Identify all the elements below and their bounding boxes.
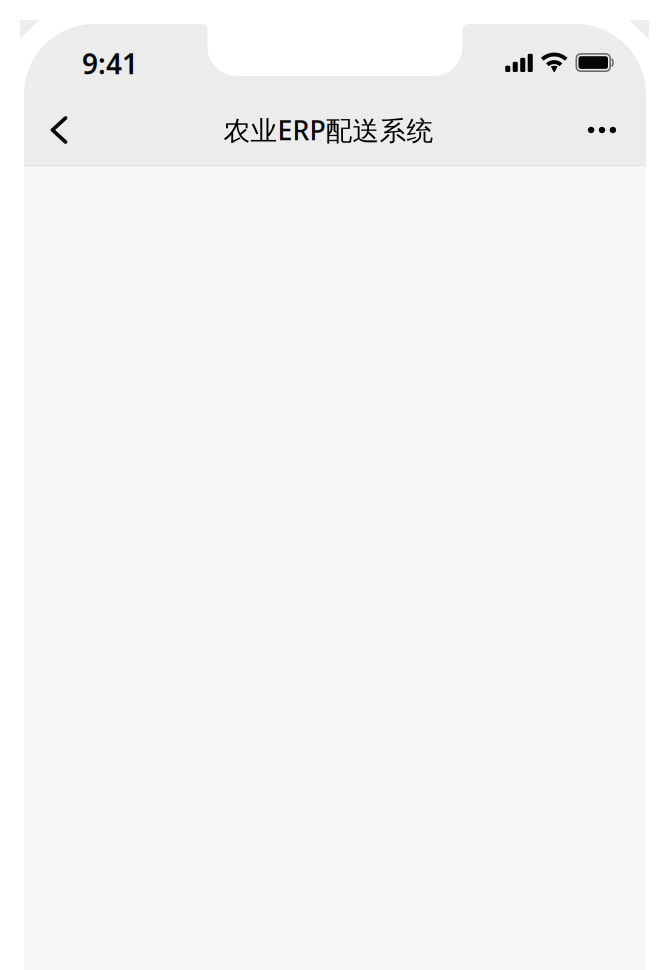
button[interactable]: 更多选项 — [580, 104, 624, 156]
staticText: 农业ERP配送系统 — [223, 112, 433, 148]
button[interactable]: 返回 — [37, 104, 81, 156]
staticText: 9:41 — [82, 45, 138, 82]
